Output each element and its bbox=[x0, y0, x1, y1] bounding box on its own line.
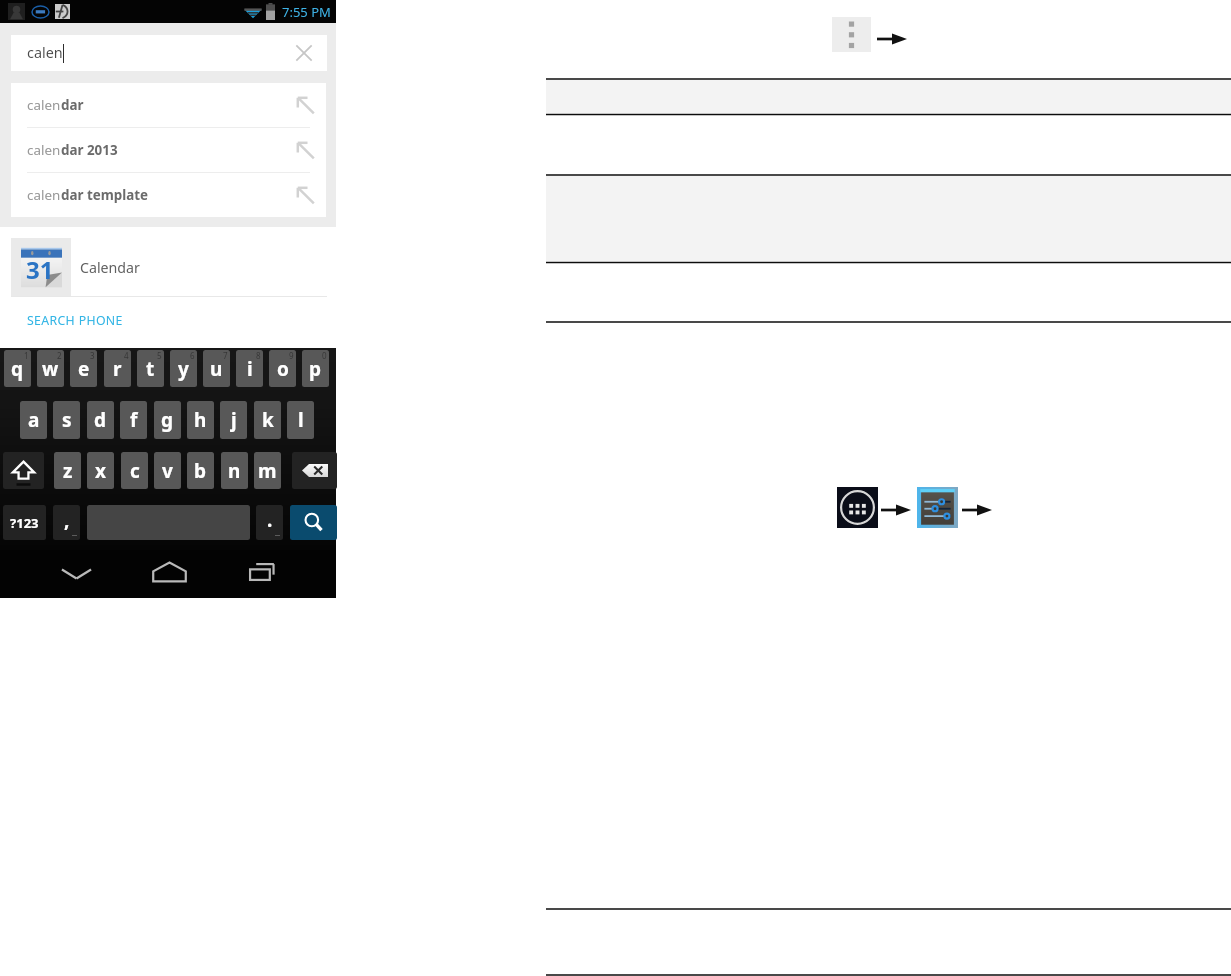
button[interactable]: ?123 bbox=[3, 505, 46, 540]
button[interactable]: Home bbox=[149, 554, 189, 590]
staticText: q bbox=[11, 356, 24, 382]
button[interactable]: k bbox=[254, 401, 281, 439]
staticText: p bbox=[309, 356, 322, 382]
staticText: 5 bbox=[157, 350, 162, 361]
staticText: f bbox=[130, 407, 138, 433]
button[interactable]: d bbox=[87, 401, 114, 439]
button[interactable]: calen bbox=[11, 173, 326, 217]
button[interactable]: x bbox=[87, 452, 114, 489]
button[interactable]: b bbox=[187, 452, 214, 489]
staticText: g bbox=[161, 407, 174, 433]
button[interactable]: g bbox=[154, 401, 181, 439]
staticText: dar bbox=[61, 96, 84, 114]
staticText: n bbox=[228, 458, 241, 484]
staticText: . bbox=[267, 507, 273, 533]
button[interactable]: All apps bbox=[837, 487, 878, 528]
button[interactable]: . bbox=[256, 505, 283, 540]
button[interactable]: j bbox=[220, 401, 247, 439]
button[interactable]: Shift bbox=[3, 452, 44, 489]
staticText: , bbox=[64, 507, 70, 533]
button[interactable]: f bbox=[120, 401, 147, 439]
staticText: dar 2013 bbox=[61, 141, 118, 159]
staticText: calen bbox=[27, 141, 61, 159]
staticText: u bbox=[210, 356, 223, 382]
staticText: z bbox=[63, 458, 73, 484]
button[interactable]: n bbox=[221, 452, 248, 489]
staticText: d bbox=[94, 407, 107, 433]
button[interactable]: w bbox=[37, 350, 64, 387]
staticText: 7 bbox=[223, 350, 228, 361]
button[interactable]: t bbox=[137, 350, 164, 387]
button[interactable]: o bbox=[269, 350, 296, 387]
staticText: 8 bbox=[256, 350, 261, 361]
staticText: Calendar bbox=[80, 258, 140, 277]
button[interactable]: a bbox=[20, 401, 47, 439]
staticText: i bbox=[247, 356, 253, 382]
button[interactable]: m bbox=[254, 452, 281, 489]
staticText: t bbox=[146, 356, 155, 382]
staticText: j bbox=[231, 407, 237, 433]
button[interactable]: Recents bbox=[243, 554, 283, 590]
button[interactable]: c bbox=[121, 452, 148, 489]
staticText: s bbox=[62, 407, 72, 433]
button[interactable]: Backspace bbox=[292, 452, 337, 489]
button[interactable]: u bbox=[203, 350, 230, 387]
button[interactable]: y bbox=[170, 350, 197, 387]
button[interactable]: p bbox=[302, 350, 329, 387]
staticText: l bbox=[298, 407, 304, 433]
button[interactable]: Settings bbox=[917, 487, 958, 528]
staticText: 6 bbox=[190, 350, 195, 361]
staticText: 2 bbox=[57, 350, 62, 361]
staticText: dar template bbox=[61, 186, 149, 204]
staticText: k bbox=[262, 407, 274, 433]
button[interactable]: calen bbox=[11, 35, 327, 71]
staticText: e bbox=[78, 356, 90, 382]
button[interactable]: calen bbox=[11, 83, 326, 127]
staticText: b bbox=[194, 458, 207, 484]
staticText: o bbox=[277, 356, 289, 382]
button[interactable]: r bbox=[104, 350, 131, 387]
staticText: x bbox=[95, 458, 106, 484]
button[interactable]: e bbox=[70, 350, 97, 387]
staticText: 0 bbox=[322, 350, 327, 361]
staticText: 31 bbox=[26, 253, 54, 286]
button[interactable]: Search bbox=[290, 505, 337, 540]
button[interactable]: h bbox=[187, 401, 214, 439]
staticText: calen bbox=[27, 43, 63, 63]
staticText: h bbox=[194, 407, 207, 433]
staticText: calen bbox=[27, 96, 61, 114]
button[interactable]: Overflow menu bbox=[832, 17, 871, 52]
staticText: y bbox=[178, 356, 189, 382]
staticText: v bbox=[162, 458, 173, 484]
staticText: calen bbox=[27, 186, 61, 204]
staticText: ?123 bbox=[10, 514, 39, 532]
staticText: 7:55 PM bbox=[282, 3, 331, 21]
staticText: r bbox=[113, 356, 122, 382]
staticText: 4 bbox=[124, 350, 129, 361]
button[interactable]: 31 bbox=[0, 238, 336, 296]
staticText: w bbox=[42, 356, 59, 382]
button[interactable]: z bbox=[54, 452, 81, 489]
button[interactable]: SEARCH PHONE bbox=[27, 312, 123, 329]
button[interactable]: q bbox=[4, 350, 31, 387]
staticText: 3 bbox=[90, 350, 95, 361]
button[interactable]: s bbox=[53, 401, 80, 439]
button[interactable]: calen bbox=[11, 128, 326, 172]
button[interactable]: i bbox=[236, 350, 263, 387]
button[interactable]: v bbox=[154, 452, 181, 489]
staticText: c bbox=[130, 458, 140, 484]
button[interactable]: l bbox=[287, 401, 314, 439]
staticText: 9 bbox=[289, 350, 294, 361]
button[interactable]: Back bbox=[56, 556, 96, 592]
staticText: m bbox=[258, 458, 277, 484]
staticText: 1 bbox=[24, 350, 29, 361]
staticText: a bbox=[28, 407, 40, 433]
other: Clear bbox=[292, 41, 316, 65]
button[interactable]: , bbox=[53, 505, 80, 540]
